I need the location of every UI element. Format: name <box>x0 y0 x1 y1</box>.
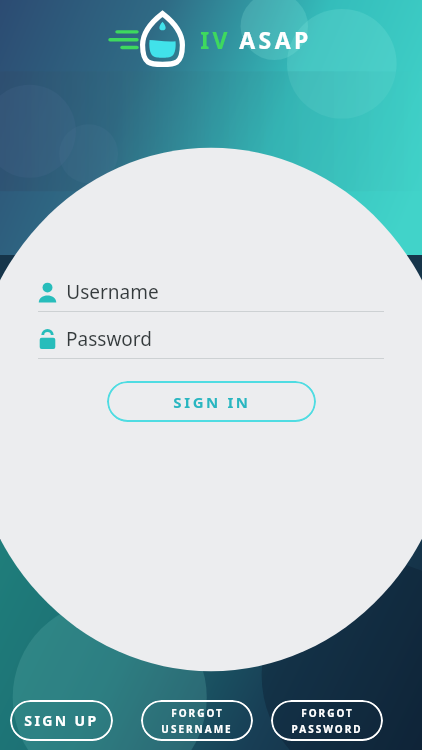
staticText: USERNAME <box>161 722 233 736</box>
button[interactable]: Password <box>38 326 384 359</box>
staticText: SIGN IN <box>173 392 251 412</box>
button[interactable]: Username <box>38 279 384 312</box>
button[interactable]: FORGOT <box>141 700 253 741</box>
button[interactable]: FORGOT <box>271 700 383 741</box>
staticText: Username <box>66 279 159 305</box>
staticText: IV <box>200 24 231 55</box>
other: Username <box>38 282 57 303</box>
staticText: ASAP <box>239 24 312 55</box>
other: Password <box>38 329 57 350</box>
staticText: Password <box>66 326 152 352</box>
staticText: FORGOT <box>301 706 354 720</box>
button[interactable]: SIGN IN <box>107 381 316 422</box>
staticText: PASSWORD <box>291 722 363 736</box>
staticText: SIGN UP <box>24 711 99 730</box>
button[interactable]: SIGN UP <box>10 700 113 741</box>
staticText: FORGOT <box>171 706 224 720</box>
